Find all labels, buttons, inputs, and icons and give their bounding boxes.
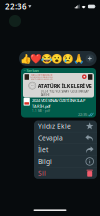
button[interactable]: Yıldız Ekle <box>34 120 97 132</box>
staticText: 22:36 <box>5 1 27 12</box>
staticText: MEB <box>31 85 34 86</box>
staticText: 👍 <box>20 53 32 64</box>
staticText: Yıldız Ekle <box>38 122 71 131</box>
button[interactable]: Bilgi <box>34 156 97 167</box>
staticText: İlet <box>38 145 48 154</box>
button[interactable]: İlet <box>34 144 97 155</box>
staticText: ATATÜRK İLKELERİ VE <box>38 82 92 89</box>
staticText: Sil <box>38 169 46 178</box>
button[interactable]: Sil <box>34 167 97 179</box>
button[interactable]: React 😂 <box>42 51 52 66</box>
staticText: 2024 VDİ SINAV ÖZETİ İNKILAP <box>32 98 85 103</box>
staticText: Cevapla <box>38 133 63 142</box>
staticText: T.C. MİLLÎ EĞİTİM BAKANLIĞI <box>31 74 53 76</box>
staticText: 1.1 MB · pdf <box>32 109 50 113</box>
staticText: 🙏 <box>73 53 85 64</box>
staticText: ~ Serkan <box>23 68 39 73</box>
button[interactable]: React 😮 <box>52 51 63 66</box>
staticText: 😂 <box>41 53 53 64</box>
staticText: ❤️ <box>30 53 42 64</box>
staticText: 2024 YILI VDİ SINAV ÖZETİ İNKILAP TARİHİ <box>40 90 89 97</box>
button[interactable]: 2024 VDİ SINAV ÖZETİ İNKILAP <box>21 97 96 111</box>
button[interactable]: React 👍 <box>20 51 31 66</box>
button[interactable]: React 😢 <box>63 51 73 66</box>
button[interactable]: Cevapla <box>34 132 97 144</box>
staticText: ÖLÇME, DEĞERLENDİRME VE SINAV <box>30 76 53 78</box>
button[interactable]: React 🙏 <box>73 51 84 66</box>
staticText: TARİH.pdf <box>32 103 50 109</box>
staticText: 22:35 <box>78 112 87 117</box>
staticText: HİZMETLERİ GENEL MÜDÜRLÜĞÜ <box>31 78 53 80</box>
button[interactable]: React ❤️ <box>31 51 42 66</box>
button[interactable]: More reactions <box>84 51 96 66</box>
staticText: 😮 <box>51 53 63 64</box>
staticText: Bilgi <box>38 157 52 166</box>
staticText: 😢 <box>62 53 74 64</box>
